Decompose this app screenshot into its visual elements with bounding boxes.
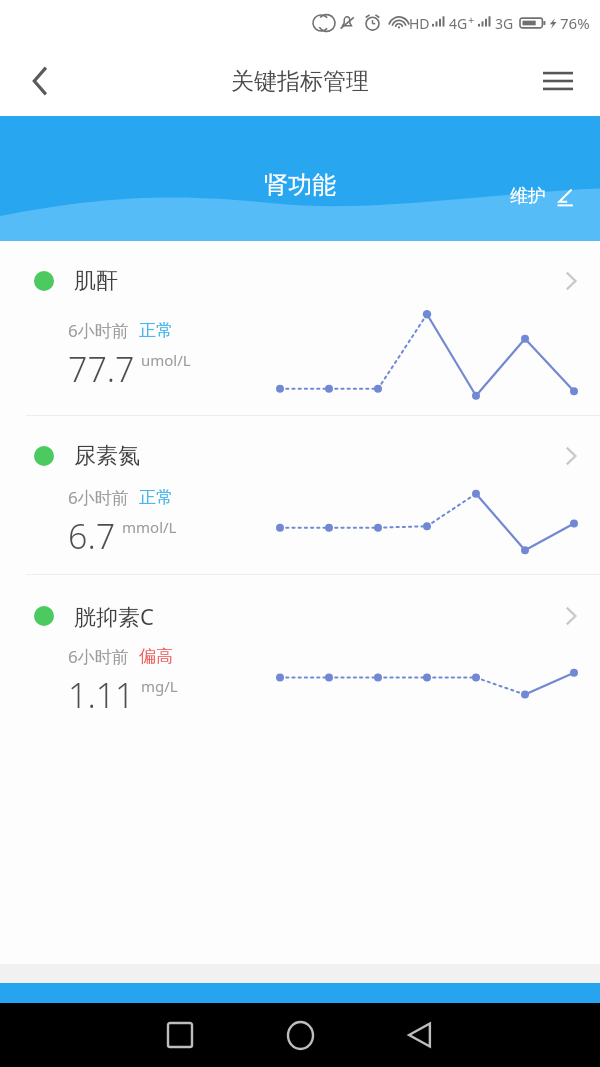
staticText: 正常 [139, 320, 173, 341]
staticText: 偏高 [139, 646, 173, 667]
staticText: 肾功能 [264, 170, 336, 200]
staticText: 尿素氮 [74, 442, 140, 470]
staticText: 肌酐 [74, 267, 118, 295]
staticText: 1.11 [68, 672, 135, 718]
staticText: 维护 [510, 185, 546, 208]
staticText: 4G [449, 14, 468, 33]
staticText: 关键指标管理 [231, 67, 369, 96]
button[interactable]: 尿素氮 [0, 416, 600, 574]
button[interactable]: Menu [532, 55, 584, 107]
button[interactable]: 胱抑素C [0, 575, 600, 731]
button[interactable]: Back [385, 1003, 455, 1067]
staticText: mg/L [141, 676, 178, 696]
button[interactable]: Back [14, 55, 66, 107]
staticText: 6小时前 [68, 645, 129, 668]
staticText: HD [409, 14, 430, 33]
button[interactable]: Recents [145, 1003, 215, 1067]
staticText: 胱抑素C [74, 601, 154, 631]
staticText: 77.7 [68, 346, 135, 392]
staticText: 正常 [139, 487, 173, 508]
button[interactable]: Home [265, 1003, 335, 1067]
button[interactable]: 肌酐 [0, 241, 600, 415]
staticText: 6.7 [68, 513, 116, 559]
staticText: 6小时前 [68, 486, 129, 509]
staticText: + [468, 12, 475, 27]
staticText: umol/L [141, 350, 191, 370]
staticText: mmol/L [122, 517, 177, 537]
staticText: 6小时前 [68, 319, 129, 342]
button[interactable]: 维护 [506, 179, 580, 214]
staticText: 76% [560, 13, 590, 33]
staticText: 3G [495, 14, 514, 33]
